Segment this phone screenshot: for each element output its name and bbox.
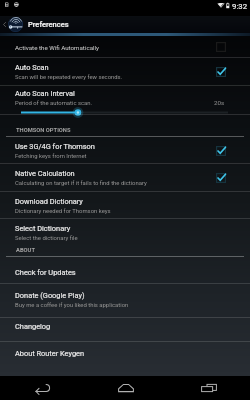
button[interactable]: Download Dictionary [0,192,250,219]
staticText: Dictionary needed for Thomson keys [15,208,111,215]
staticText: Activate the Wifi Automatically [15,44,99,51]
staticText: About Router Keygen [15,349,85,358]
staticText: ABOUT [16,247,36,254]
staticText: Select the dictionary file [15,235,78,242]
button[interactable]: Auto Scan Interval [0,86,250,115]
button[interactable]: Use 3G/4G for Thomson [0,137,250,164]
button[interactable]: Navigate up [0,14,8,34]
staticText: Donate (Google Play) [15,291,85,300]
staticText: Use 3G/4G for Thomson [15,142,95,151]
staticText: Select Dictionary [15,224,71,233]
button[interactable]: About Router Keygen [0,342,250,376]
staticText: Preferences [28,20,69,29]
button[interactable]: Auto Scan [0,58,250,86]
staticText: Auto Scan [15,63,49,72]
staticText: THOMSON OPTIONS [16,127,71,134]
staticText: 20s [214,99,225,106]
staticText: Auto Scan Interval [15,89,75,98]
staticText: 9:32 [232,2,248,11]
staticText: Period of the automatic scan. [15,100,93,107]
staticText: Changelog [15,322,51,331]
button[interactable]: Changelog [0,318,250,342]
button[interactable]: Back [0,376,84,400]
staticText: Fetching keys from Internet [15,153,87,160]
staticText: Download Dictionary [15,197,83,206]
button[interactable]: Home [84,376,167,400]
button[interactable]: Native Calculation [0,164,250,192]
button[interactable]: Check for Updates [0,257,250,284]
button[interactable]: Activate the Wifi Automatically [0,36,250,58]
staticText: Calculating on target if it fails to fin… [15,180,147,187]
button[interactable]: Select Dictionary [0,219,250,246]
button[interactable]: Recent apps [167,376,250,400]
button[interactable]: Donate (Google Play) [0,284,250,318]
staticText: Native Calculation [15,169,75,178]
staticText: Scan will be repeated every few seconds. [15,74,123,81]
staticText: Buy me a coffee if you liked this applic… [15,302,129,309]
staticText: Check for Updates [15,268,76,277]
